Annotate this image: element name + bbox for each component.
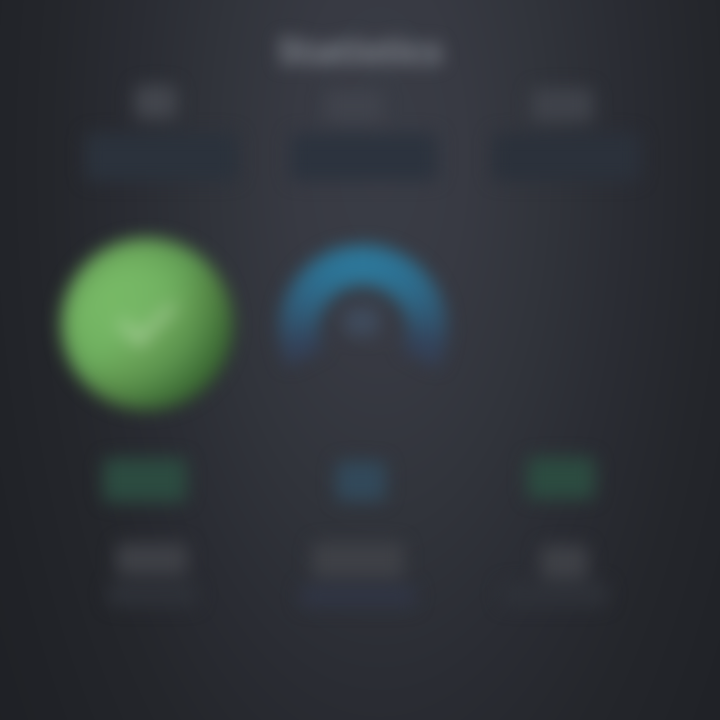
button[interactable]	[116, 543, 188, 575]
button[interactable]	[527, 457, 595, 499]
button[interactable]	[531, 88, 593, 122]
button[interactable]	[135, 85, 177, 119]
button[interactable]	[103, 458, 187, 502]
staticText: Statistics	[278, 26, 443, 75]
button[interactable]	[336, 461, 386, 501]
button[interactable]	[540, 545, 588, 579]
